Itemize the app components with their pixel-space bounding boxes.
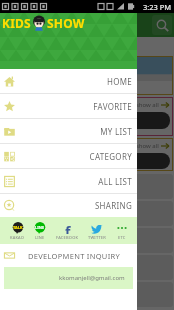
staticText: TALK xyxy=(13,225,23,230)
staticText: ALL LIST xyxy=(15,176,132,187)
staticText: Arpo the robot xyxy=(4,237,46,245)
staticText: FAVORITE xyxy=(15,101,132,112)
button[interactable]: MY LIST xyxy=(0,119,137,143)
button[interactable]: CATEGORY xyxy=(0,144,137,168)
staticText: ETC xyxy=(118,235,126,240)
staticText: SHOW xyxy=(47,15,85,31)
staticText: show all xyxy=(136,101,159,109)
button[interactable]: HOME xyxy=(0,69,137,93)
button[interactable]: DEVELOPMENT INQUIRY xyxy=(0,244,137,267)
staticText: KIDS xyxy=(2,15,31,31)
staticText: MY LIST xyxy=(15,126,132,137)
staticText: LINE xyxy=(35,225,45,230)
staticText: 3:23 PM xyxy=(143,2,172,12)
button[interactable]: Search xyxy=(152,15,172,35)
button[interactable]: SHARING xyxy=(0,194,137,217)
button[interactable]: TALK xyxy=(10,222,25,240)
button[interactable]: ALL LIST xyxy=(0,169,137,193)
staticText: DEVELOPMENT INQUIRY xyxy=(15,251,133,261)
button[interactable]: LINE xyxy=(34,222,46,240)
staticText: LINE xyxy=(35,235,45,240)
staticText: HOME xyxy=(15,76,132,87)
staticText: Arpo the robot xyxy=(4,264,46,272)
button[interactable]: FAVORITE xyxy=(0,94,137,118)
button[interactable]: f xyxy=(56,222,79,240)
staticText: CATEGORY xyxy=(15,151,132,162)
staticText: KAKAO xyxy=(10,235,25,240)
button[interactable]: ETC xyxy=(116,222,128,240)
staticText: Arpo the robot xyxy=(4,183,46,191)
staticText: f xyxy=(65,222,71,234)
staticText: kkomanjell@gmail.com xyxy=(59,274,125,282)
staticText: SHARING xyxy=(15,200,132,211)
staticText: show all xyxy=(136,142,159,150)
button[interactable]: TWITTER xyxy=(88,222,106,240)
staticText: Arpo the robot xyxy=(4,210,46,218)
staticText: FACEBOOK xyxy=(56,235,79,240)
staticText: TWITTER xyxy=(88,235,106,240)
